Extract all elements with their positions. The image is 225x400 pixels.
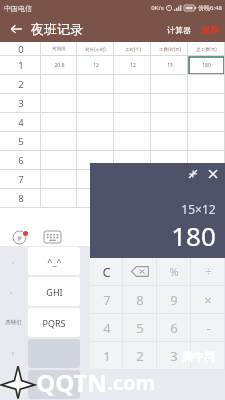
button[interactable] bbox=[151, 151, 188, 170]
button[interactable]: 2 bbox=[123, 342, 157, 369]
staticText: 1 bbox=[103, 347, 111, 365]
button[interactable]: 保存 bbox=[196, 19, 225, 40]
button[interactable] bbox=[77, 132, 114, 151]
button[interactable] bbox=[41, 113, 77, 132]
button[interactable]: 15 bbox=[151, 56, 188, 75]
button[interactable]: C bbox=[90, 258, 123, 285]
button[interactable] bbox=[114, 113, 151, 132]
button[interactable]: 5 bbox=[123, 314, 157, 341]
button[interactable] bbox=[41, 75, 77, 94]
button[interactable]: × bbox=[191, 286, 225, 313]
staticText: ， bbox=[10, 258, 16, 265]
button[interactable] bbox=[188, 189, 225, 208]
staticText: 2 bbox=[18, 78, 24, 91]
staticText: 180 bbox=[171, 218, 216, 253]
button[interactable]: 9 bbox=[157, 286, 191, 313]
button[interactable]: 工费/时(元) bbox=[151, 42, 188, 56]
button[interactable]: Switch input method bbox=[12, 230, 27, 245]
button[interactable] bbox=[188, 75, 225, 94]
button[interactable]: 时间段 bbox=[41, 42, 77, 56]
button[interactable]: 7 bbox=[90, 286, 123, 313]
staticText: 5 bbox=[136, 319, 144, 337]
button[interactable] bbox=[77, 189, 114, 208]
button[interactable]: 时长(小时) bbox=[77, 42, 114, 56]
button[interactable] bbox=[188, 132, 225, 151]
button[interactable] bbox=[77, 113, 114, 132]
button[interactable]: 总工费(元) bbox=[188, 42, 225, 56]
button[interactable]: 计算器 bbox=[162, 20, 196, 40]
button[interactable] bbox=[41, 170, 77, 189]
button[interactable]: 20-8 bbox=[41, 56, 77, 75]
button[interactable]: Back bbox=[6, 19, 26, 39]
button[interactable] bbox=[77, 170, 114, 189]
button[interactable]: - bbox=[191, 314, 225, 341]
button[interactable]: 1 bbox=[90, 342, 123, 369]
button[interactable]: 5 bbox=[0, 132, 41, 151]
button[interactable] bbox=[41, 151, 77, 170]
button[interactable]: ÷ bbox=[191, 258, 225, 285]
button[interactable] bbox=[41, 132, 77, 151]
button[interactable] bbox=[41, 94, 77, 113]
button[interactable]: ! bbox=[0, 338, 26, 369]
button[interactable] bbox=[188, 151, 225, 170]
button[interactable]: 杰特们 bbox=[0, 307, 26, 338]
button[interactable] bbox=[188, 94, 225, 113]
staticText: 保存 bbox=[201, 24, 219, 35]
button[interactable]: Backspace bbox=[123, 258, 157, 285]
button[interactable]: 4 bbox=[90, 314, 123, 341]
button[interactable]: 3 bbox=[0, 94, 41, 113]
button[interactable]: Expand bbox=[186, 167, 200, 181]
staticText: % bbox=[169, 264, 179, 279]
button[interactable]: 工时(个) bbox=[114, 42, 151, 56]
staticText: 12 bbox=[130, 62, 136, 69]
button[interactable] bbox=[77, 151, 114, 170]
button[interactable]: 3 bbox=[157, 342, 191, 369]
staticText: 工费/时(元) bbox=[159, 46, 181, 52]
button[interactable]: — bbox=[0, 369, 26, 400]
button[interactable]: 1 bbox=[0, 56, 41, 75]
button[interactable] bbox=[28, 370, 80, 399]
staticText: 工时(个) bbox=[125, 46, 141, 52]
button[interactable]: Keyboard bbox=[44, 231, 61, 243]
button[interactable]: 12 bbox=[114, 56, 151, 75]
button[interactable] bbox=[114, 75, 151, 94]
button[interactable] bbox=[151, 189, 188, 208]
button[interactable] bbox=[151, 75, 188, 94]
button[interactable]: 8 bbox=[0, 189, 41, 208]
button[interactable]: 0 bbox=[0, 42, 41, 56]
button[interactable]: % bbox=[157, 258, 191, 285]
button[interactable]: 8 bbox=[123, 286, 157, 313]
staticText: 夜班记录 bbox=[31, 21, 83, 37]
button[interactable]: 6 bbox=[0, 151, 41, 170]
button[interactable] bbox=[188, 113, 225, 132]
button[interactable]: 12 bbox=[77, 56, 114, 75]
button[interactable]: PQRS bbox=[28, 308, 80, 337]
button[interactable] bbox=[151, 132, 188, 151]
button[interactable]: GHI bbox=[28, 277, 80, 306]
button[interactable]: 180 bbox=[188, 56, 225, 75]
button[interactable]: 2 bbox=[0, 75, 41, 94]
button[interactable]: + bbox=[191, 342, 225, 369]
button[interactable]: 6 bbox=[157, 314, 191, 341]
button[interactable] bbox=[114, 94, 151, 113]
button[interactable] bbox=[188, 170, 225, 189]
button[interactable] bbox=[114, 151, 151, 170]
staticText: ÷ bbox=[205, 264, 212, 279]
button[interactable] bbox=[151, 94, 188, 113]
button[interactable] bbox=[77, 94, 114, 113]
button[interactable] bbox=[77, 75, 114, 94]
button[interactable]: 7 bbox=[0, 170, 41, 189]
button[interactable]: 4 bbox=[0, 113, 41, 132]
button[interactable]: ^_^ bbox=[28, 247, 80, 275]
button[interactable] bbox=[114, 132, 151, 151]
button[interactable] bbox=[151, 113, 188, 132]
staticText: 1 bbox=[18, 59, 24, 72]
button[interactable] bbox=[41, 189, 77, 208]
button[interactable]: Close bbox=[206, 167, 220, 181]
